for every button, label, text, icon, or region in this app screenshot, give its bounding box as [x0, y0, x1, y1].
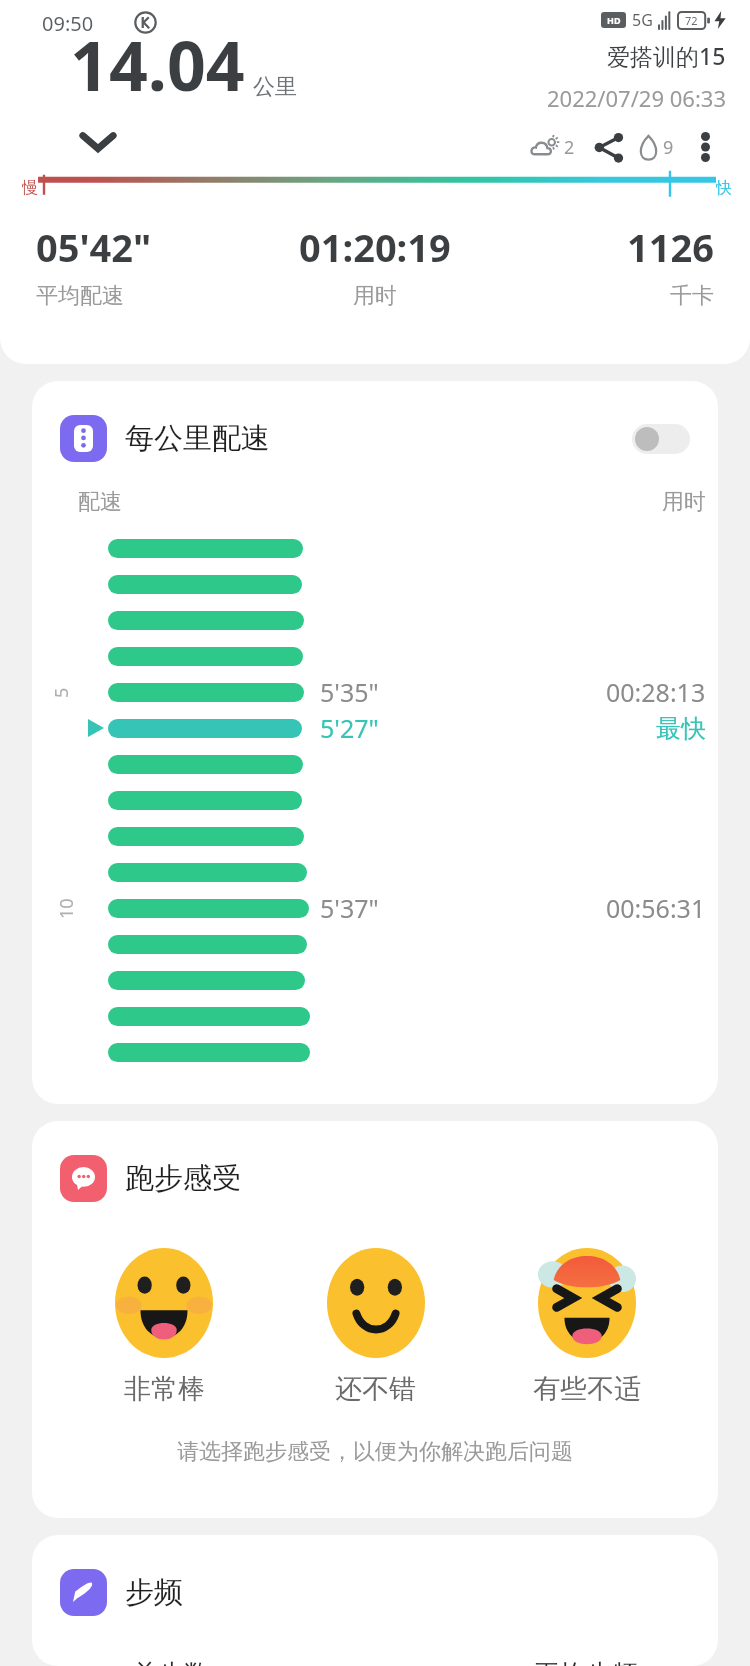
- staticText: 千卡: [670, 282, 714, 310]
- staticText: 每公里配速: [125, 420, 270, 457]
- staticText: 公里: [253, 73, 297, 101]
- staticText: 05'42": [36, 221, 152, 273]
- staticText: HD: [607, 14, 621, 26]
- button[interactable]: 有些不适: [481, 1248, 692, 1406]
- button[interactable]: More options: [684, 126, 726, 168]
- staticText: 1126: [627, 221, 714, 273]
- staticText: 非常棒: [124, 1372, 205, 1406]
- button[interactable]: 还不错: [270, 1248, 481, 1406]
- staticText: 用时: [353, 282, 397, 310]
- staticText: 5G: [632, 9, 653, 31]
- staticText: 5'37": [320, 891, 379, 925]
- staticText: 快: [716, 178, 732, 197]
- button[interactable]: Collapse: [70, 113, 126, 169]
- staticText: 5: [49, 687, 74, 698]
- staticText: 平均配速: [36, 282, 124, 310]
- staticText: 慢: [22, 178, 38, 197]
- staticText: 5'27": [320, 711, 379, 745]
- staticText: 10: [54, 898, 79, 919]
- staticText: 9: [663, 135, 674, 160]
- staticText: 最快: [656, 713, 706, 744]
- staticText: 跑步感受: [125, 1160, 241, 1197]
- staticText: 还不错: [335, 1372, 416, 1406]
- staticText: 2: [564, 135, 575, 160]
- staticText: 步频: [125, 1574, 183, 1611]
- staticText: 00:28:13: [606, 675, 706, 709]
- staticText: 01:20:19: [299, 221, 451, 273]
- button[interactable]: Share: [587, 125, 631, 169]
- staticText: 72: [685, 13, 698, 28]
- staticText: 00:56:31: [606, 891, 706, 925]
- staticText: 请选择跑步感受，以便为你解决跑后问题: [32, 1438, 718, 1466]
- button[interactable]: Toggle pace chart: [632, 424, 690, 454]
- staticText: 14.04: [70, 18, 245, 111]
- button[interactable]: 非常棒: [58, 1248, 270, 1406]
- staticText: 用时: [662, 488, 706, 516]
- staticText: 爱搭训的15: [607, 40, 726, 71]
- staticText: 配速: [78, 488, 122, 516]
- staticText: 有些不适: [533, 1372, 641, 1406]
- staticText: 2022/07/29 06:33: [547, 83, 726, 113]
- button[interactable]: Weather: [530, 132, 561, 163]
- staticText: 09:50: [42, 10, 94, 37]
- staticText: 平均步频: [534, 1658, 638, 1666]
- staticText: 总步数: [132, 1658, 210, 1666]
- staticText: 5'35": [320, 675, 379, 709]
